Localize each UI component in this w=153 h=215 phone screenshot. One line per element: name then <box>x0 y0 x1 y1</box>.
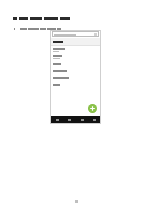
button[interactable] <box>50 81 101 88</box>
button[interactable] <box>50 53 101 60</box>
button[interactable]: Recents <box>53 116 61 124</box>
button[interactable] <box>50 67 101 74</box>
button[interactable] <box>50 74 101 81</box>
button[interactable] <box>50 38 101 45</box>
button[interactable] <box>50 60 101 67</box>
button[interactable]: Home <box>78 116 86 124</box>
button[interactable]: Back <box>65 116 73 124</box>
button[interactable]: Menu <box>52 31 99 37</box>
button[interactable] <box>50 46 101 53</box>
button[interactable]: Add event <box>88 104 97 113</box>
button[interactable]: Menu <box>90 116 98 124</box>
